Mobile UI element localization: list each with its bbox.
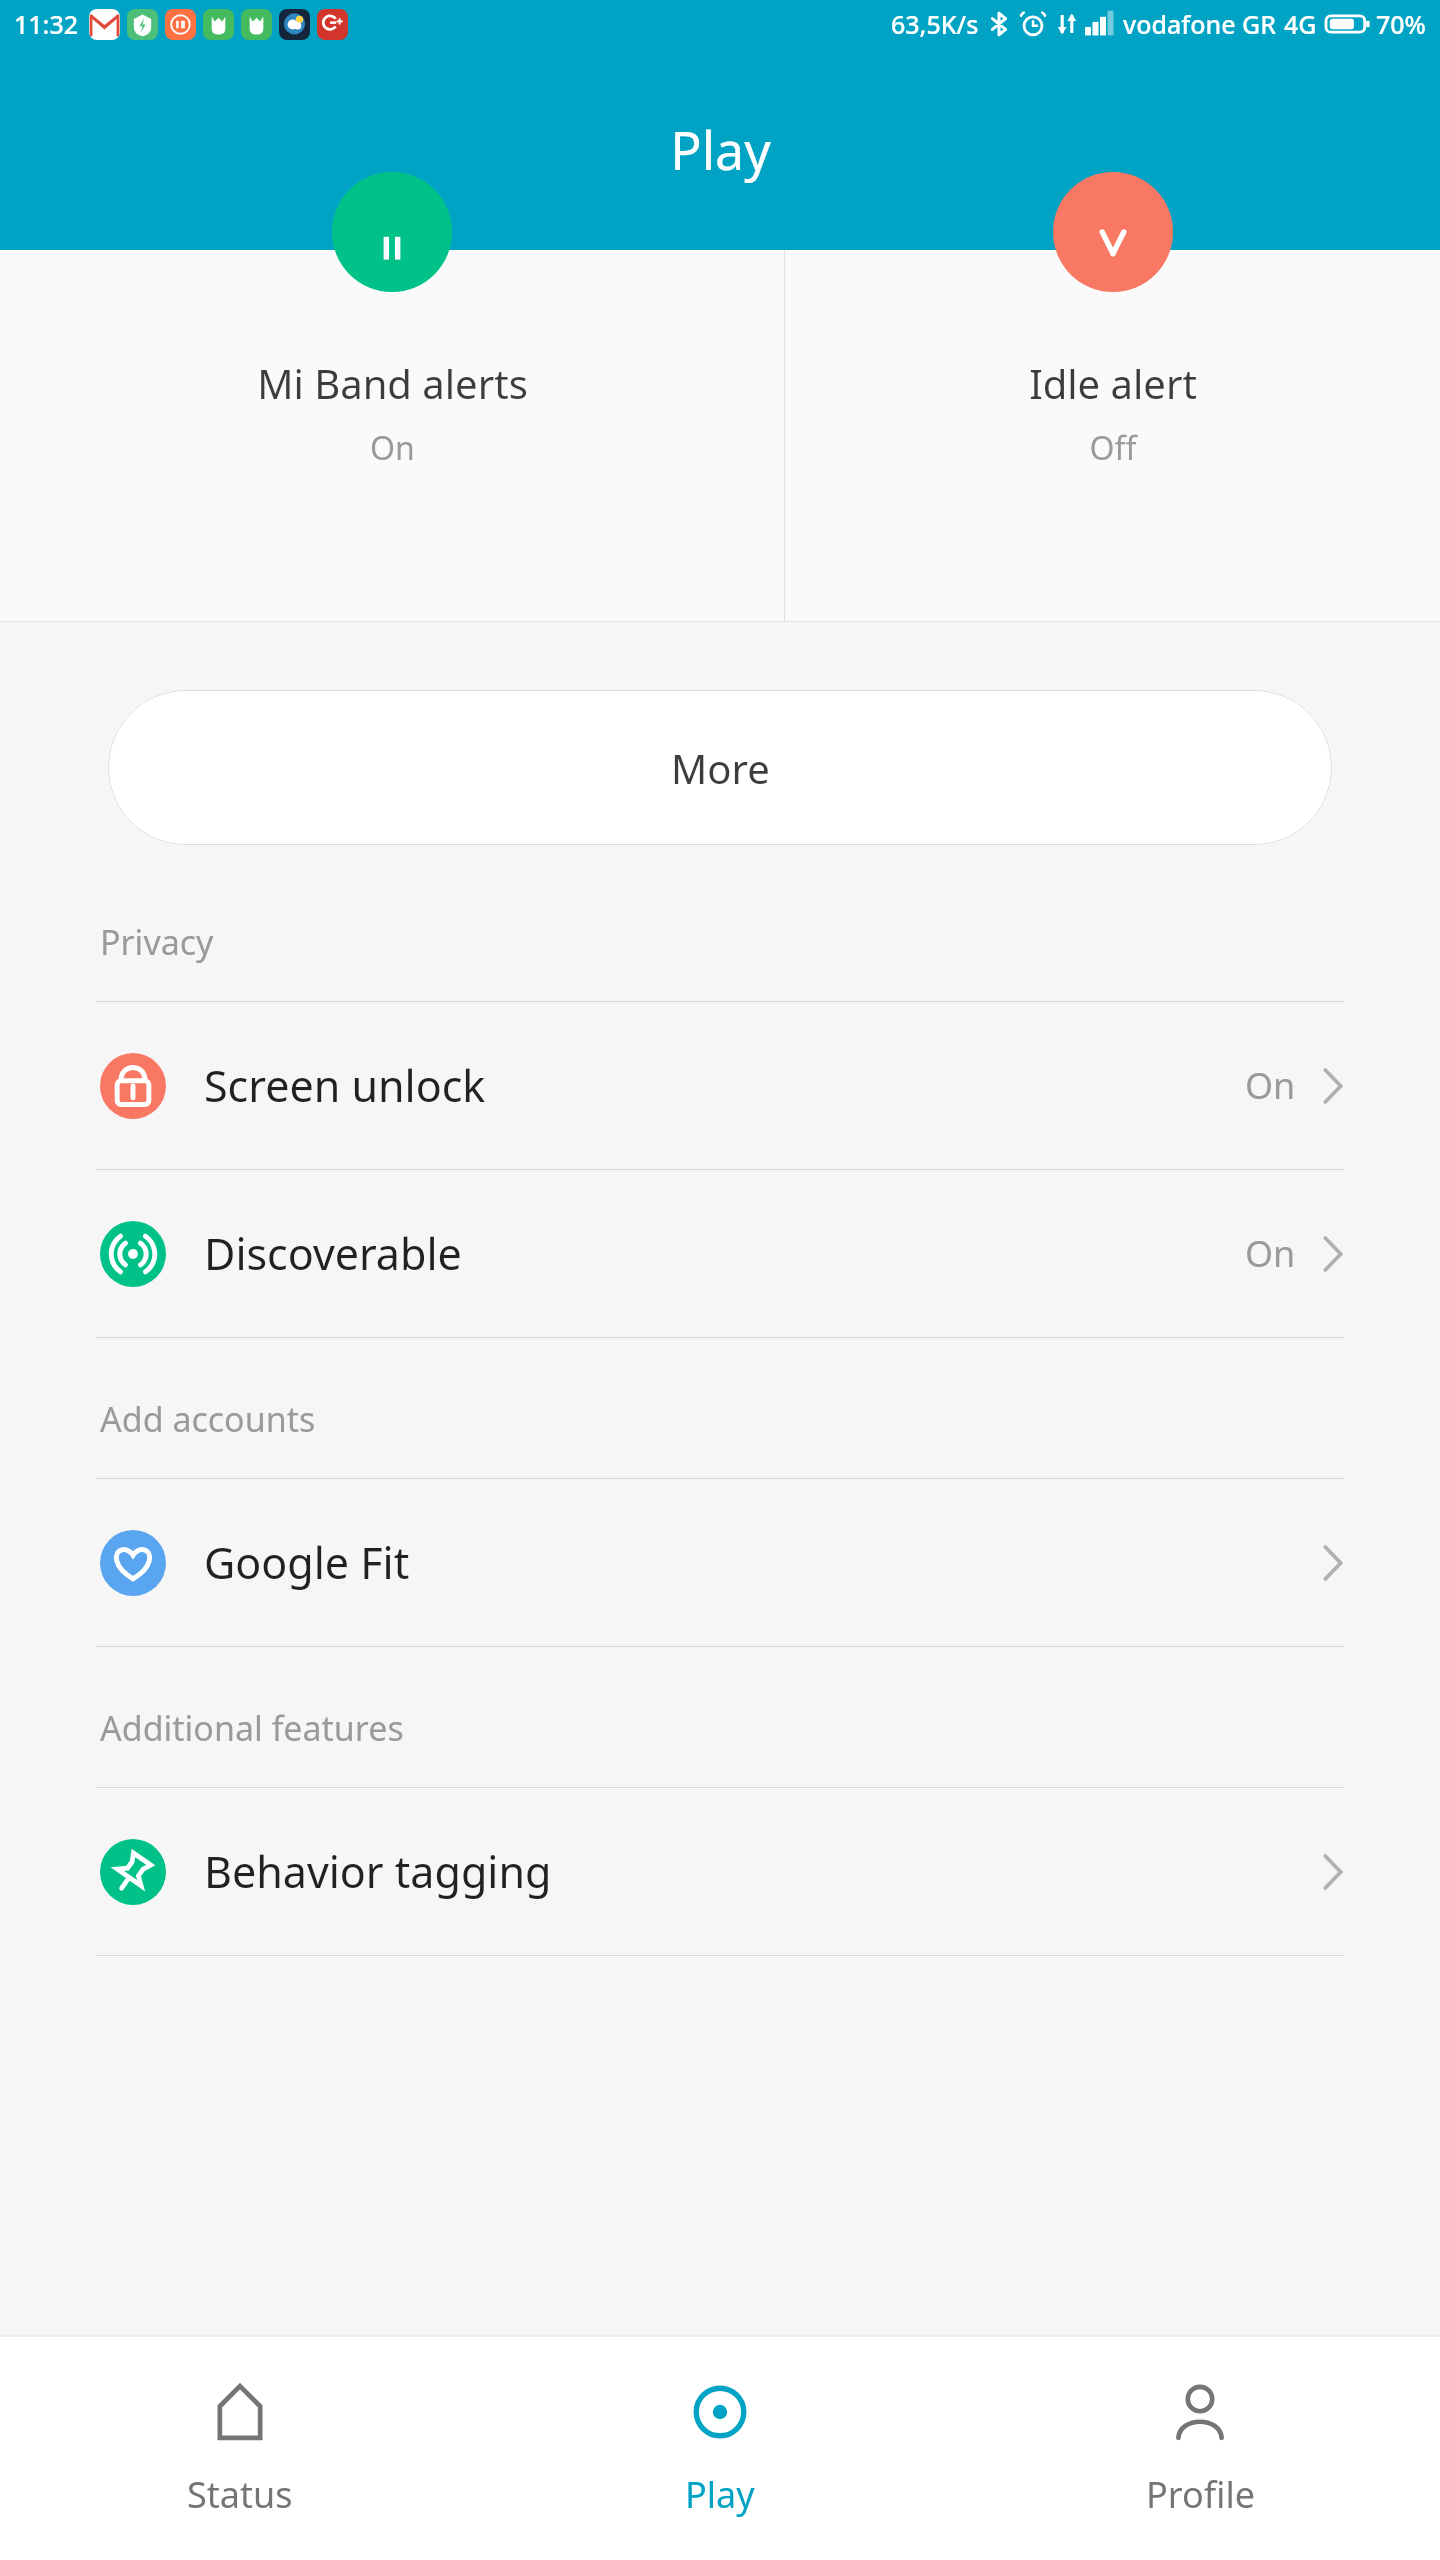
button[interactable]: Google Fit	[0, 1479, 1440, 1646]
staticText: Play	[685, 2470, 755, 2519]
staticText: 63,5K/s	[891, 7, 979, 41]
staticText: On	[370, 426, 415, 470]
staticText: On	[1245, 1229, 1296, 1278]
staticText: 4G	[1284, 7, 1317, 41]
button[interactable]: Mi Band alerts	[0, 250, 784, 622]
staticText: 11:32	[14, 7, 79, 41]
staticText: Mi Band alerts	[257, 356, 528, 410]
button[interactable]: Discoverable	[0, 1170, 1440, 1337]
button[interactable]: Profile	[960, 2335, 1440, 2560]
staticText: On	[1245, 1061, 1296, 1110]
staticText: Add accounts	[100, 1396, 316, 1442]
button[interactable]: Status	[0, 2335, 480, 2560]
staticText: Discoverable	[204, 1224, 462, 1283]
staticText: vodafone GR	[1123, 7, 1276, 41]
staticText: More	[671, 741, 770, 795]
staticText: Google Fit	[204, 1533, 410, 1592]
button[interactable]: Idle alert	[785, 250, 1440, 622]
staticText: Play	[670, 114, 771, 185]
button[interactable]: Screen unlock	[0, 1002, 1440, 1169]
staticText: Idle alert	[1029, 356, 1197, 410]
button[interactable]: Play	[480, 2335, 960, 2560]
staticText: Profile	[1146, 2470, 1255, 2519]
button[interactable]: Behavior tagging	[0, 1788, 1440, 1955]
button[interactable]: More	[108, 690, 1332, 845]
staticText: Behavior tagging	[204, 1842, 552, 1901]
staticText: Off	[1089, 426, 1137, 470]
staticText: Privacy	[100, 919, 214, 965]
staticText: Additional features	[100, 1705, 404, 1751]
staticText: Screen unlock	[204, 1056, 486, 1115]
staticText: 70%	[1376, 7, 1426, 41]
staticText: Status	[187, 2470, 293, 2519]
